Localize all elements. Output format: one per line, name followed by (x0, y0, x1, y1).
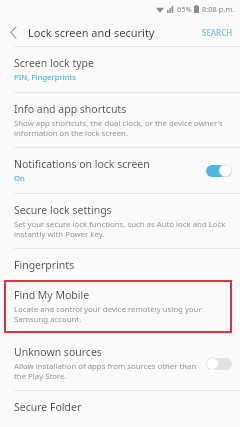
button[interactable]: Find My Mobile (4, 280, 232, 333)
staticText: Secure Folder (14, 400, 82, 414)
staticText: Locate and control your device remotely … (14, 304, 222, 324)
staticText: Lock screen and security (28, 25, 155, 40)
staticText: Allow installation of apps from sources … (14, 361, 198, 381)
staticText: Unknown sources (14, 345, 102, 359)
staticText: Set your secure lock functions, such as … (14, 219, 226, 239)
staticText: On (14, 173, 25, 184)
button[interactable]: Unknown sources (0, 336, 240, 390)
button[interactable]: Info and app shortcuts (0, 93, 240, 147)
button[interactable]: Screen lock type (0, 47, 240, 92)
button[interactable]: On (206, 164, 232, 177)
staticText: Notifications on lock screen (14, 157, 150, 171)
staticText: Find My Mobile (14, 288, 90, 302)
button[interactable]: Secure Folder (0, 391, 240, 427)
button[interactable]: Fingerprints (0, 249, 240, 280)
staticText: Show app shortcuts, the dual clock, or t… (14, 118, 226, 138)
staticText: Screen lock type (14, 56, 94, 70)
button[interactable]: Secure lock settings (0, 194, 240, 248)
button[interactable]: Notifications on lock screen (0, 148, 240, 193)
button[interactable]: Off (206, 357, 232, 370)
button[interactable]: SEARCH (195, 22, 240, 43)
staticText: Secure lock settings (14, 203, 112, 217)
button[interactable]: Navigate up (0, 19, 26, 45)
staticText: 8:08 p.m. (202, 4, 235, 14)
staticText: Fingerprints (14, 258, 75, 272)
staticText: 65% (177, 4, 192, 14)
staticText: Info and app shortcuts (14, 102, 127, 116)
staticText: SEARCH (202, 27, 233, 38)
staticText: PIN, Fingerprints (14, 72, 77, 83)
